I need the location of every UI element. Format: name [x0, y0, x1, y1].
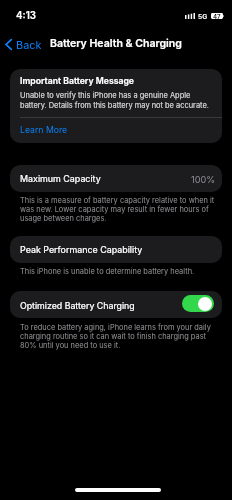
staticText: 4:13: [16, 10, 37, 22]
staticText: To reduce battery aging, iPhone learns f…: [20, 323, 220, 350]
other: Cellular signal: [185, 13, 195, 19]
staticText: Back: [16, 38, 42, 51]
button[interactable]: Optimized Battery Charging: [10, 291, 222, 318]
staticText: Learn More: [20, 125, 68, 136]
button[interactable]: Maximum Capacity: [10, 165, 222, 192]
staticText: Unable to verify this iPhone has a genui…: [20, 91, 215, 109]
staticText: 47: [213, 13, 221, 19]
button[interactable]: Learn More: [10, 118, 222, 143]
staticText: Battery Health & Charging: [50, 37, 182, 50]
staticText: This is a measure of battery capacity re…: [20, 196, 220, 223]
staticText: Important Battery Message: [20, 76, 134, 87]
staticText: 5G: [198, 13, 208, 21]
staticText: 100%: [191, 174, 216, 185]
button[interactable]: Peak Performance Capability: [10, 236, 222, 263]
other: Battery 47 percent: [211, 13, 223, 19]
button[interactable]: Back: [1, 35, 46, 53]
staticText: This iPhone is unable to determine batte…: [20, 267, 220, 276]
staticText: Peak Performance Capability: [20, 244, 143, 255]
staticText: Optimized Battery Charging: [20, 300, 135, 311]
staticText: Maximum Capacity: [20, 173, 101, 184]
